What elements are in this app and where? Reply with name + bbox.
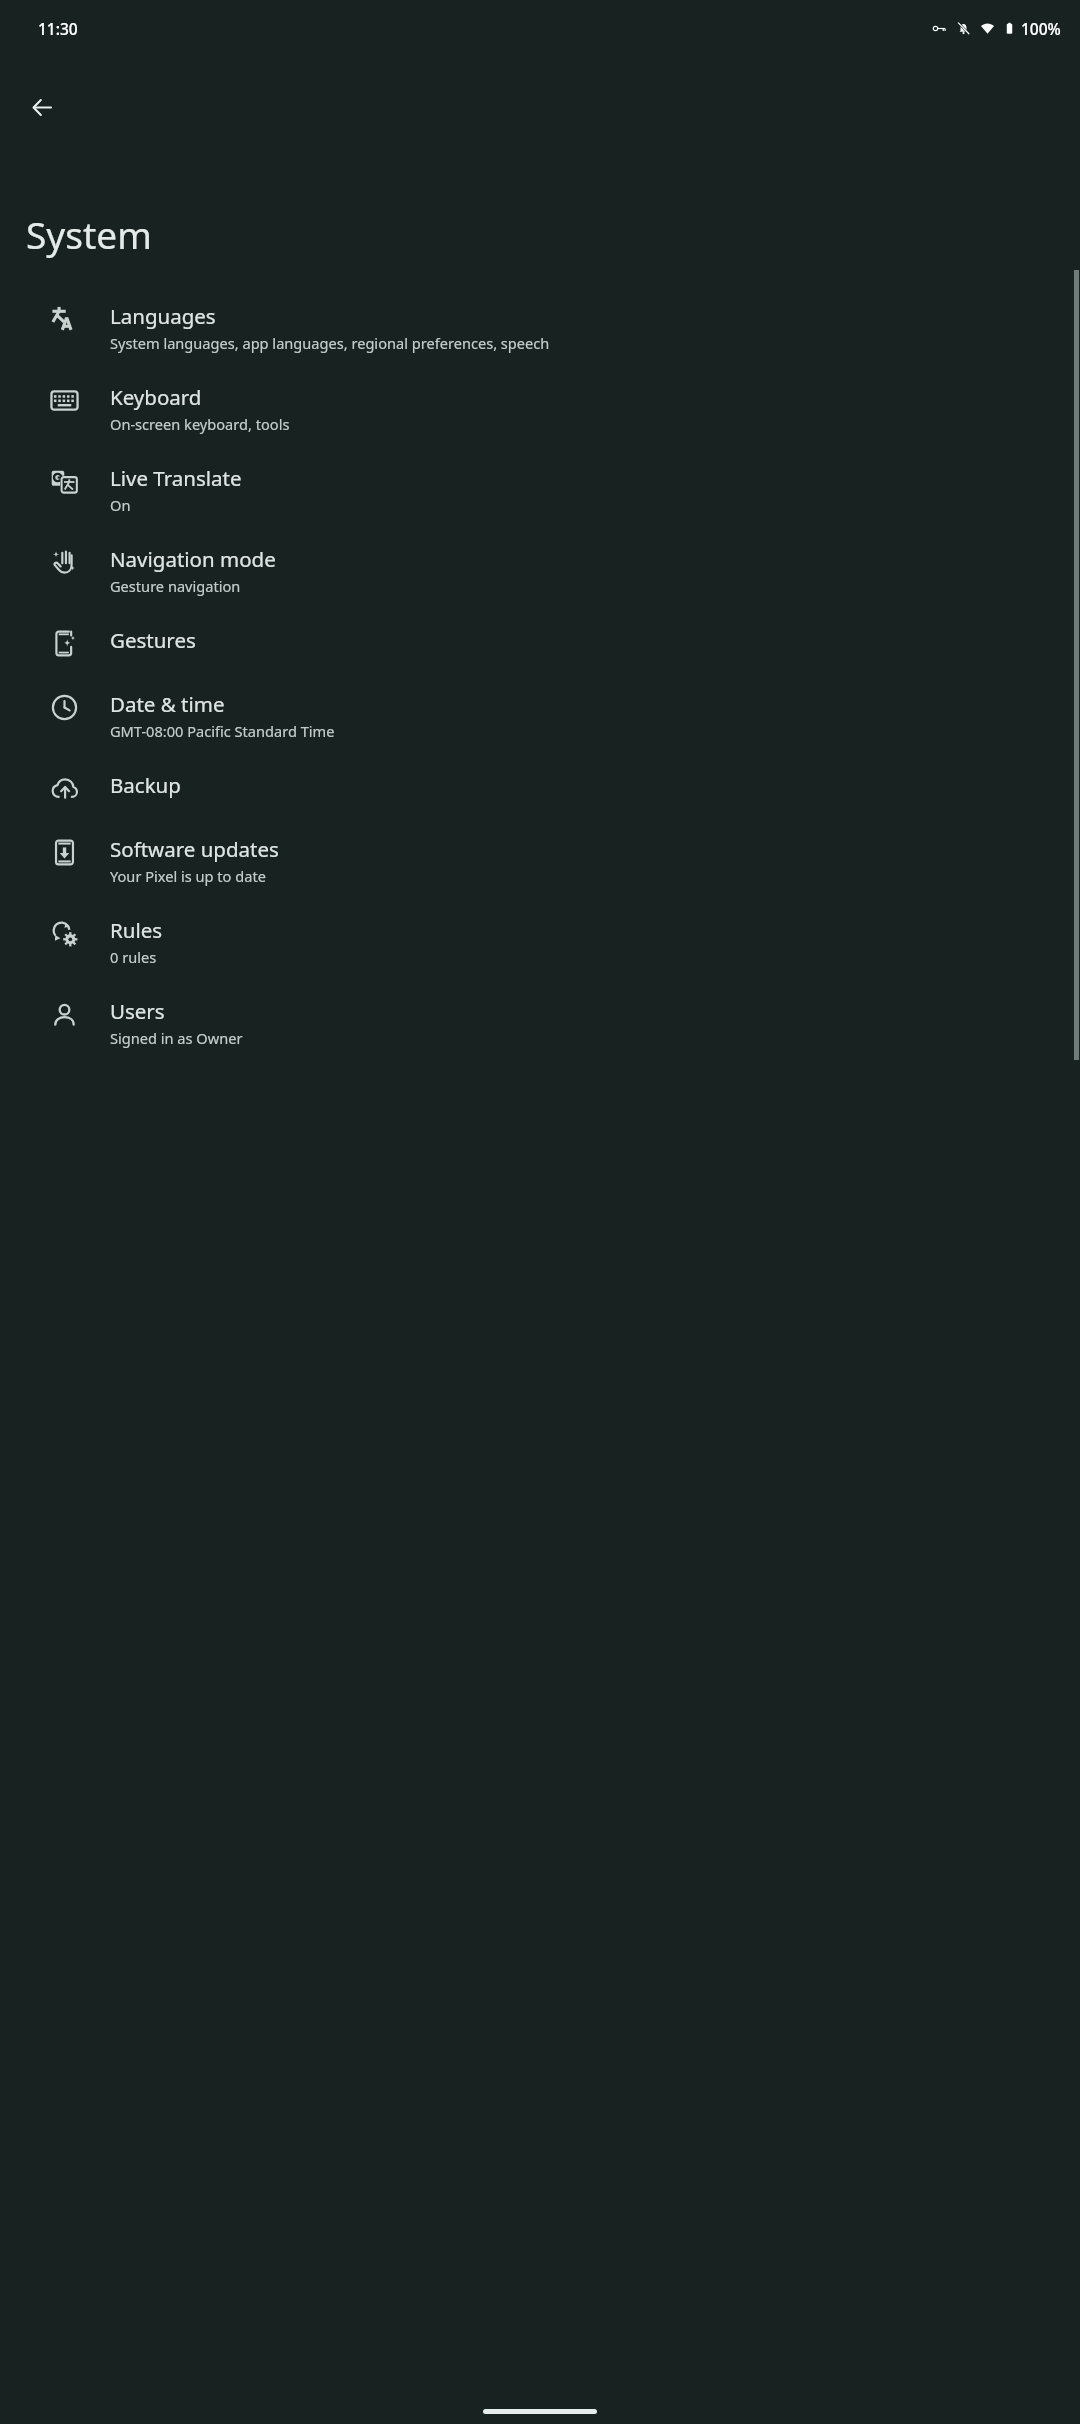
- staticText: On: [110, 495, 131, 515]
- staticText: Navigation mode: [110, 545, 276, 573]
- staticText: Your Pixel is up to date: [110, 866, 266, 886]
- button[interactable]: Back: [14, 79, 70, 135]
- staticText: Gesture navigation: [110, 576, 241, 596]
- staticText: On-screen keyboard, tools: [110, 414, 290, 434]
- staticText: Keyboard: [110, 383, 202, 411]
- staticText: Rules: [110, 916, 163, 944]
- button[interactable]: Gestures: [0, 611, 1080, 675]
- staticText: Live Translate: [110, 464, 242, 492]
- staticText: Gestures: [110, 626, 196, 654]
- staticText: GMT-08:00 Pacific Standard Time: [110, 721, 335, 741]
- button[interactable]: Rules: [0, 901, 1080, 982]
- staticText: System: [26, 209, 152, 259]
- button[interactable]: Languages: [0, 287, 1080, 368]
- button[interactable]: Keyboard: [0, 368, 1080, 449]
- staticText: System languages, app languages, regiona…: [110, 333, 550, 353]
- staticText: Software updates: [110, 835, 279, 863]
- staticText: Backup: [110, 771, 181, 799]
- button[interactable]: Date & time: [0, 675, 1080, 756]
- staticText: Users: [110, 997, 165, 1025]
- button[interactable]: Navigation mode: [0, 530, 1080, 611]
- button[interactable]: Backup: [0, 756, 1080, 820]
- staticText: Languages: [110, 302, 216, 330]
- button[interactable]: Live Translate: [0, 449, 1080, 530]
- staticText: 100%: [1021, 18, 1061, 39]
- button[interactable]: Software updates: [0, 820, 1080, 901]
- staticText: 11:30: [38, 18, 78, 39]
- staticText: 0 rules: [110, 947, 157, 967]
- staticText: Signed in as Owner: [110, 1028, 243, 1048]
- staticText: Date & time: [110, 690, 225, 718]
- button[interactable]: Users: [0, 982, 1080, 1063]
